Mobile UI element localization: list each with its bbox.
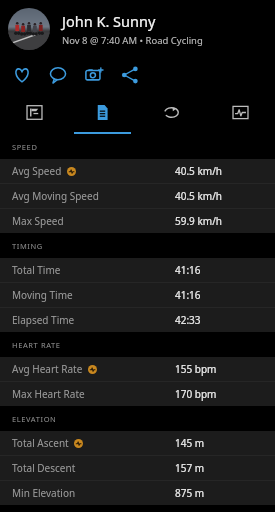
- staticText: 41:16: [175, 263, 201, 277]
- button[interactable]: Details: [68, 92, 137, 132]
- button[interactable]: Min Elevation: [0, 481, 275, 505]
- staticText: 59.9 km/h: [175, 214, 223, 228]
- staticText: 170 bpm: [175, 387, 217, 401]
- staticText: Total Time: [12, 263, 61, 277]
- staticText: SPEED: [12, 142, 38, 152]
- button[interactable]: Graphs: [206, 92, 275, 132]
- button[interactable]: Avg Heart Rate: [0, 357, 275, 381]
- staticText: Min Elevation: [12, 486, 76, 500]
- button[interactable]: Total Ascent: [0, 431, 275, 455]
- staticText: 155 bpm: [175, 362, 217, 376]
- button[interactable]: Share: [118, 63, 142, 87]
- staticText: 875 m: [175, 486, 205, 500]
- button[interactable]: Total Time: [0, 258, 275, 282]
- button[interactable]: Add photo: [82, 63, 106, 87]
- button[interactable]: Profile photo: [0, 0, 275, 58]
- button[interactable]: Avg Speed: [0, 159, 275, 183]
- staticText: 41:16: [175, 288, 201, 302]
- staticText: Avg Speed: [12, 164, 62, 178]
- button[interactable]: Total Descent: [0, 456, 275, 480]
- button[interactable]: Max Speed: [0, 209, 275, 233]
- button[interactable]: Elapsed Time: [0, 308, 275, 332]
- button[interactable]: Avg Moving Speed: [0, 184, 275, 208]
- staticText: Max Heart Rate: [12, 387, 85, 401]
- staticText: 40.5 km/h: [175, 164, 223, 178]
- staticText: John K. Sunny: [62, 11, 156, 31]
- staticText: ELEVATION: [12, 414, 57, 424]
- staticText: TIMING: [12, 241, 43, 251]
- staticText: 157 m: [175, 461, 205, 475]
- staticText: Total Ascent: [12, 436, 69, 450]
- staticText: 40.5 km/h: [175, 189, 223, 203]
- staticText: Total Descent: [12, 461, 76, 475]
- staticText: Avg Heart Rate: [12, 362, 83, 376]
- button[interactable]: Moving Time: [0, 283, 275, 307]
- button[interactable]: Comment: [46, 63, 70, 87]
- button[interactable]: Like: [10, 63, 34, 87]
- staticText: HEART RATE: [12, 340, 61, 350]
- staticText: Nov 8 @ 7:40 AM • Road Cycling: [62, 34, 203, 47]
- staticText: Max Speed: [12, 214, 64, 228]
- button[interactable]: Profile photo: [8, 8, 50, 50]
- button[interactable]: Map: [0, 92, 68, 132]
- staticText: 145 m: [175, 436, 205, 450]
- button[interactable]: Laps: [137, 92, 206, 132]
- staticText: Elapsed Time: [12, 313, 75, 327]
- staticText: 42:33: [175, 313, 201, 327]
- staticText: Moving Time: [12, 288, 73, 302]
- staticText: Avg Moving Speed: [12, 189, 99, 203]
- button[interactable]: Max Heart Rate: [0, 382, 275, 406]
